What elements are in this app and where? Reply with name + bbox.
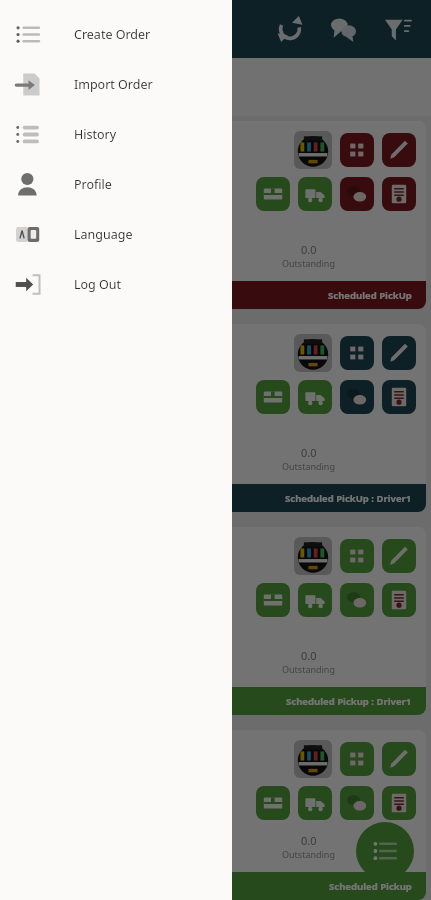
staticText: 0.0 <box>301 833 317 848</box>
button[interactable]: Language <box>0 209 232 259</box>
button[interactable]: Invoice <box>382 786 416 820</box>
button[interactable]: Filter <box>381 12 415 46</box>
button[interactable]: Chat <box>340 583 374 617</box>
staticText: Outstanding <box>282 460 335 472</box>
button[interactable]: 12:43 <box>5 527 426 715</box>
staticText: 0.0 <box>301 648 317 663</box>
button[interactable]: Package <box>256 177 290 211</box>
button[interactable]: Edit <box>382 742 416 776</box>
staticText: Import Order <box>74 76 153 93</box>
staticText: Scheduled PickUp <box>328 289 412 302</box>
staticText: Outstanding <box>282 848 335 860</box>
button[interactable]: Edit <box>382 336 416 370</box>
button[interactable]: Package <box>256 380 290 414</box>
button[interactable]: Chat <box>340 177 374 211</box>
button[interactable]: Photo <box>294 740 332 778</box>
button[interactable]: Delivery <box>298 786 332 820</box>
button[interactable]: 9:04 <box>5 121 426 309</box>
button[interactable]: Edit <box>382 539 416 573</box>
button[interactable]: Create Order <box>0 9 232 59</box>
button[interactable]: Chat <box>340 380 374 414</box>
button[interactable]: 1:55 <box>5 324 426 512</box>
button[interactable]: Package <box>256 786 290 820</box>
staticText: 0.0 <box>114 70 137 92</box>
button[interactable]: Items <box>340 336 374 370</box>
staticText: To <box>30 190 41 204</box>
staticText: History <box>74 126 117 143</box>
button[interactable]: Invoice <box>382 583 416 617</box>
button[interactable]: Delivery <box>298 177 332 211</box>
staticText: 9:04 <box>23 168 48 185</box>
button[interactable]: Photo <box>294 131 332 169</box>
staticText: Scheduled Pickup <box>329 880 412 893</box>
button[interactable]: 13:41 <box>5 730 426 900</box>
staticText: Scheduled Pickup : Driver1 <box>286 695 412 708</box>
button[interactable]: Package <box>256 583 290 617</box>
button[interactable]: Delivery <box>298 380 332 414</box>
button[interactable]: Photo <box>294 537 332 575</box>
button[interactable]: Photo <box>294 334 332 372</box>
button[interactable]: Import Order <box>0 59 232 109</box>
button[interactable]: Chat <box>327 12 361 46</box>
staticText: Outstanding <box>282 663 335 675</box>
button[interactable]: Log Out <box>0 259 232 309</box>
staticText: Profile <box>74 176 112 193</box>
button[interactable]: Refresh <box>273 12 307 46</box>
staticText: Scheduled PickUp : Driver1 <box>285 492 412 505</box>
button[interactable]: Items <box>340 539 374 573</box>
button[interactable]: Chat <box>340 786 374 820</box>
staticText: Create Order <box>74 26 151 43</box>
button[interactable]: Items <box>340 133 374 167</box>
button[interactable]: New order <box>356 822 414 880</box>
button[interactable]: Delivery <box>298 583 332 617</box>
button[interactable]: Profile <box>0 159 232 209</box>
staticText: 0.0 <box>301 445 317 460</box>
staticText: Language <box>74 226 133 243</box>
staticText: 0.0 <box>301 242 317 257</box>
staticText: Log Out <box>74 276 122 293</box>
staticText: Outstanding <box>282 257 335 269</box>
button[interactable]: Invoice <box>382 380 416 414</box>
button[interactable]: Items <box>340 742 374 776</box>
button[interactable]: Invoice <box>382 177 416 211</box>
button[interactable]: History <box>0 109 232 159</box>
button[interactable]: Edit <box>382 133 416 167</box>
